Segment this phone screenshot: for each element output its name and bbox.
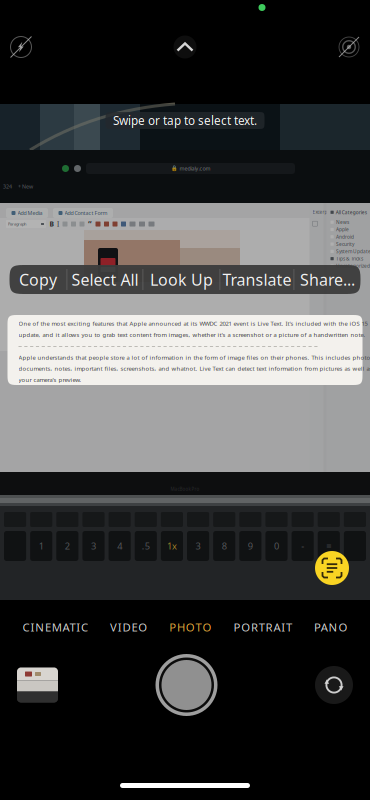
staticText: 4 [117, 540, 122, 552]
staticText: System Updates [336, 248, 370, 255]
staticText: One of the most exciting features that A… [18, 319, 367, 327]
button[interactable]: Copy [9, 265, 66, 294]
staticText: I [57, 220, 59, 228]
staticText: Apple understands that people store a lo… [18, 353, 370, 361]
staticText: CINEMATIC [23, 619, 88, 635]
button[interactable]: VIDEO [99, 614, 158, 640]
staticText: 1x [167, 540, 177, 552]
staticText: Share... [300, 269, 355, 290]
staticText: VIDEO [110, 619, 147, 635]
staticText: 3 [196, 540, 201, 552]
staticText: 2 [65, 540, 70, 552]
staticText: B [49, 220, 53, 228]
staticText: 324 [3, 183, 12, 190]
button[interactable]: PORTRAIT [222, 614, 303, 640]
button[interactable]: Translate [220, 265, 293, 294]
staticText: Android [336, 233, 354, 240]
staticText: Select All [71, 269, 138, 290]
button[interactable]: Live Photo off [335, 33, 363, 61]
staticText: “ [88, 219, 92, 229]
button[interactable]: Live Text [315, 551, 349, 585]
staticText: 8 [222, 540, 227, 552]
button[interactable]: Look Up [143, 265, 219, 294]
button[interactable]: CINEMATIC [12, 614, 99, 640]
staticText: - [301, 540, 304, 552]
button[interactable]: PANO [303, 614, 358, 640]
button[interactable]: PHOTO [158, 614, 222, 640]
button[interactable]: Share... [294, 265, 360, 294]
staticText: + New [18, 183, 33, 190]
button[interactable]: Photo library [17, 667, 58, 702]
staticText: 🔒 [170, 165, 177, 172]
staticText: Uncategorized [336, 263, 370, 269]
staticText: 1 [39, 540, 44, 552]
staticText: Look Up [150, 269, 213, 290]
staticText: Paragraph [8, 221, 26, 227]
staticText: Translate [222, 269, 291, 290]
staticText: All Categories [336, 209, 367, 215]
button[interactable]: Flash off [7, 33, 35, 61]
staticText: .5 [142, 540, 150, 552]
staticText: PHOTO [169, 619, 211, 635]
staticText: PORTRAIT [233, 619, 292, 635]
staticText: MacBook Pro [170, 486, 199, 492]
staticText: Excerpt [312, 209, 329, 215]
staticText: your camera's preview. [18, 376, 81, 384]
staticText: Swipe or tap to select text. [113, 112, 257, 128]
staticText: Tips & Tricks [336, 255, 363, 262]
staticText: Apple [336, 226, 349, 233]
staticText: 3 [91, 540, 96, 552]
staticText: documents, notes, important files, scree… [18, 365, 370, 373]
staticText: PANO [314, 619, 347, 635]
button[interactable]: Select All [67, 265, 142, 294]
button[interactable]: Flip camera [315, 666, 353, 704]
staticText: Copy [19, 269, 57, 290]
staticText: News [336, 219, 349, 225]
staticText: Add Contact Form [64, 209, 107, 217]
staticText: 0 [274, 540, 279, 552]
staticText: Security [336, 241, 354, 247]
button[interactable]: More camera options [170, 32, 200, 62]
button[interactable]: Take photo [155, 654, 217, 716]
staticText: 9 [248, 540, 253, 552]
staticText: Add Media [17, 209, 42, 217]
staticText: update, and it allows you to grab text c… [18, 331, 365, 339]
staticText: = [326, 540, 331, 552]
staticText: medialy.com [179, 165, 210, 172]
